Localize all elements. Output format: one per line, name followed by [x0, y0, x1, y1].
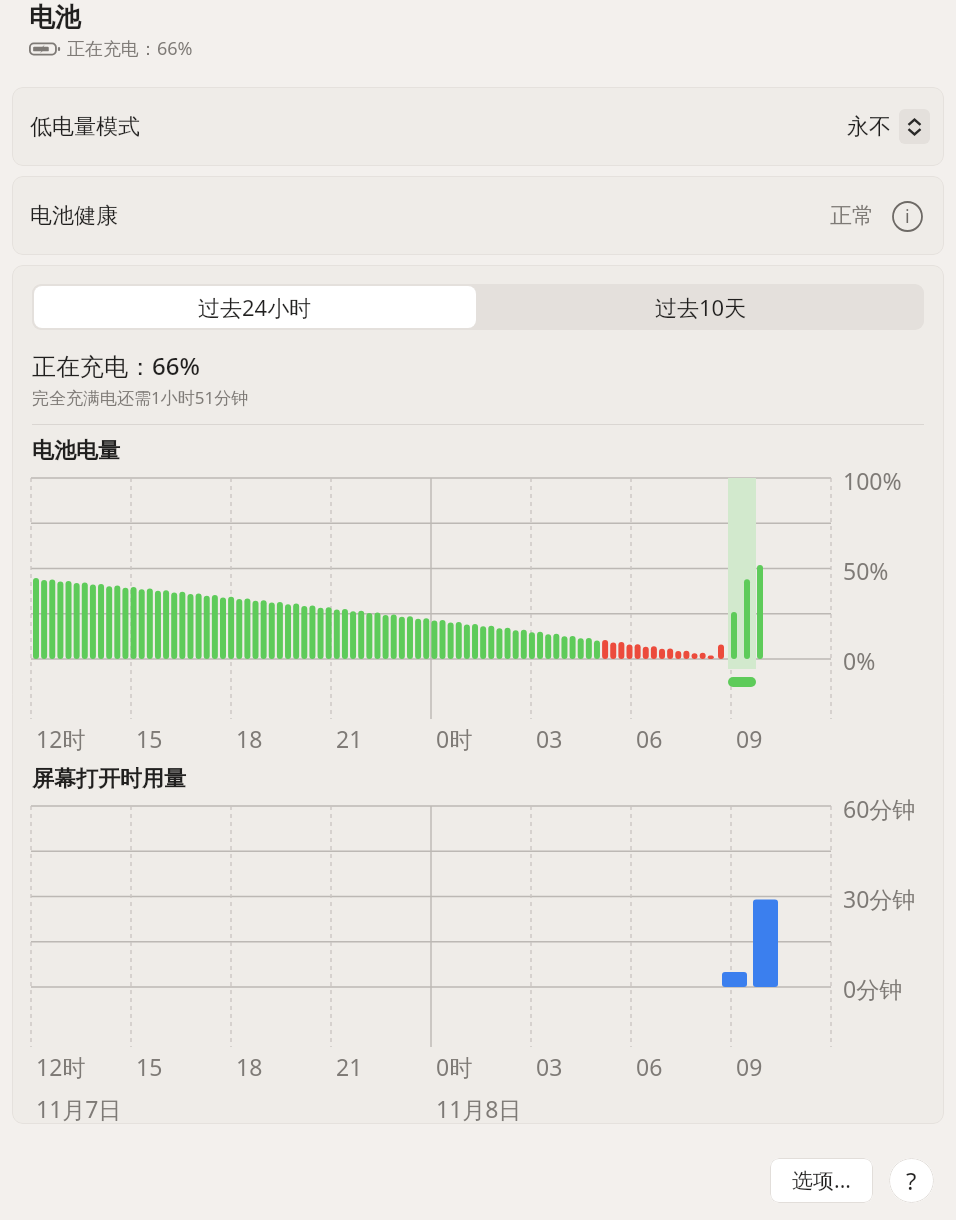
staticText: 正在充电：66% — [67, 36, 193, 61]
staticText: 0时 — [436, 1051, 473, 1082]
staticText: 过去24小时 — [198, 292, 312, 322]
staticText: 15 — [136, 723, 163, 754]
staticText: 21 — [336, 723, 363, 754]
staticText: 完全充满电还需1小时51分钟 — [32, 386, 249, 409]
button[interactable]: 过去10天 — [478, 284, 924, 330]
staticText: 屏幕打开时用量 — [32, 765, 186, 793]
staticText: 21 — [336, 1051, 363, 1082]
staticText: 12时 — [36, 723, 86, 754]
staticText: 11月8日 — [436, 1093, 522, 1124]
staticText: 100% — [843, 465, 902, 496]
staticText: 过去10天 — [655, 292, 747, 322]
staticText: 30分钟 — [843, 883, 916, 914]
staticText: 03 — [536, 1051, 563, 1082]
staticText: 11月7日 — [36, 1093, 122, 1124]
staticText: 03 — [536, 723, 563, 754]
staticText: 低电量模式 — [30, 113, 140, 141]
staticText: 60分钟 — [843, 793, 916, 824]
staticText: 06 — [636, 1051, 663, 1082]
staticText: i — [905, 204, 910, 229]
staticText: 0时 — [436, 723, 473, 754]
button[interactable]: 过去24小时 — [34, 286, 476, 328]
other: 正在充电 — [29, 40, 60, 58]
staticText: 15 — [136, 1051, 163, 1082]
staticText: 选项... — [792, 1166, 851, 1195]
staticText: 正常 — [830, 202, 874, 230]
staticText: 永不 — [847, 113, 891, 141]
button[interactable]: 电池健康信息 — [890, 199, 924, 233]
staticText: 电池健康 — [30, 202, 118, 230]
staticText: 0% — [843, 645, 876, 676]
button[interactable]: 选项... — [770, 1158, 873, 1203]
staticText: 电池电量 — [32, 437, 120, 465]
staticText: 09 — [736, 723, 763, 754]
staticText: 正在充电：66% — [32, 349, 200, 382]
staticText: 电池 — [29, 1, 81, 34]
button[interactable]: 帮助 — [889, 1158, 934, 1203]
staticText: 0分钟 — [843, 973, 903, 1004]
staticText: 18 — [236, 723, 263, 754]
staticText: 09 — [736, 1051, 763, 1082]
staticText: 50% — [843, 555, 889, 586]
staticText: 18 — [236, 1051, 263, 1082]
button[interactable]: 永不 — [847, 109, 930, 144]
staticText: 06 — [636, 723, 663, 754]
staticText: 12时 — [36, 1051, 86, 1082]
staticText: ? — [906, 1164, 917, 1197]
